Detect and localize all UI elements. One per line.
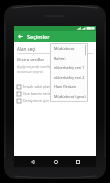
staticText: ekberbahiş seri 2 [54,75,85,80]
staticText: ekberbahiş seri 1 [54,65,85,70]
button[interactable]: ekberbahiş seri 1 [51,63,87,72]
staticText: Hani fleskan [54,84,77,89]
button[interactable]: ekberbahiş seri 2 [51,73,87,82]
staticText: Müdürboot (gros) [54,94,86,99]
button[interactable]: Back [28,157,37,166]
button[interactable]: Home [51,157,60,166]
button[interactable]: Back [16,32,25,41]
button[interactable]: Deniyorum için [14,97,96,104]
button[interactable]: Müdürboot [51,44,87,53]
staticText: Seçimler [27,33,50,40]
button[interactable]: Gün batımı verim [14,90,96,97]
staticText: Gün batımı verim [23,91,53,96]
staticText: Rahmi Kilkantinosta [54,56,87,61]
staticText: Aşağı seçenek vasıfları [17,64,53,69]
button[interactable]: Müdürboot (gros) [51,92,87,101]
button[interactable]: Recent apps [73,157,82,166]
staticText: Alan seçi [17,46,36,52]
button[interactable]: Rahmi Kilkantinosta [51,54,87,63]
staticText: Müdürboot [54,46,75,51]
button[interactable]: Hani fleskan [51,82,87,91]
staticText: sorunsuz seçiniz [17,69,44,74]
staticText: Deniyorum için [23,98,49,103]
button[interactable]: Alan seçi [14,44,96,53]
staticText: İmsak vakti plan [23,84,51,89]
staticText: Ekstra vasıflar [17,57,45,63]
button[interactable]: İmsak vakti plan [14,83,96,90]
